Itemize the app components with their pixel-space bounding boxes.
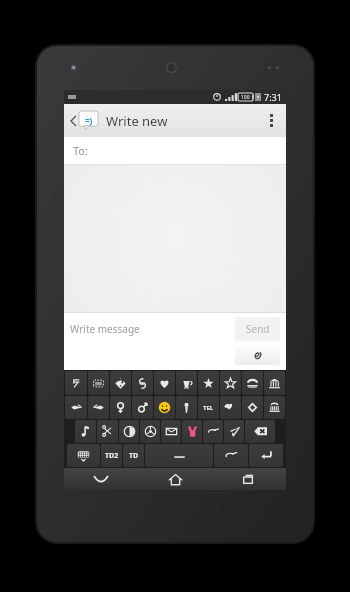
button[interactable]: MALE bbox=[132, 396, 153, 419]
button[interactable]: SCISSOR bbox=[97, 420, 118, 443]
button[interactable]: Send bbox=[235, 317, 280, 341]
button[interactable]: Back bbox=[69, 107, 100, 134]
button[interactable]: ENVELOPE bbox=[161, 420, 181, 443]
button[interactable]: CUP bbox=[176, 371, 197, 395]
button[interactable]: Write message bbox=[70, 322, 235, 336]
button[interactable]: FEMALE bbox=[110, 396, 131, 419]
button[interactable]: Recents bbox=[212, 468, 286, 490]
button[interactable]: MEDAL bbox=[176, 396, 197, 419]
button[interactable]: OBJ bbox=[88, 371, 109, 395]
button[interactable]: DIAMONDQ bbox=[110, 371, 131, 395]
button[interactable]: SECTION bbox=[132, 371, 153, 395]
button[interactable]: DEL bbox=[245, 420, 275, 443]
button[interactable]: PENCIL bbox=[214, 444, 248, 467]
button[interactable]: MOON bbox=[119, 420, 139, 443]
staticText: =) bbox=[85, 115, 93, 126]
button[interactable]: Home bbox=[138, 468, 212, 490]
button[interactable]: STAR bbox=[198, 371, 219, 395]
button[interactable]: Hide keyboard bbox=[64, 468, 138, 490]
button[interactable]: RUPEE bbox=[65, 371, 87, 395]
button[interactable]: PLANE bbox=[224, 420, 244, 443]
button[interactable]: Attach bbox=[235, 346, 280, 365]
button[interactable]: BIRD bbox=[220, 396, 241, 419]
button[interactable]: SPACE bbox=[145, 444, 213, 467]
button[interactable]: TEL bbox=[198, 396, 219, 419]
button[interactable]: FOUNT bbox=[264, 396, 285, 419]
button[interactable]: BANK bbox=[264, 371, 285, 395]
button[interactable]: DIAMOND bbox=[242, 396, 263, 419]
button[interactable]: TD bbox=[123, 444, 144, 467]
button[interactable]: PHONE bbox=[242, 371, 263, 395]
staticText: 7:31 bbox=[264, 91, 282, 103]
staticText: Send bbox=[246, 322, 270, 336]
button[interactable]: ATOM bbox=[140, 420, 160, 443]
button[interactable]: STAROUT bbox=[220, 371, 241, 395]
staticText: Write message bbox=[70, 322, 140, 336]
staticText: Write new bbox=[106, 112, 168, 130]
button[interactable]: More options bbox=[262, 106, 281, 135]
button[interactable]: NOTE bbox=[75, 420, 96, 443]
button[interactable]: PEN bbox=[203, 420, 223, 443]
staticText: TEL bbox=[203, 404, 214, 412]
button[interactable]: ARROW1 bbox=[65, 396, 87, 419]
button[interactable]: SMILEY bbox=[154, 396, 175, 419]
staticText: 100 bbox=[241, 94, 250, 101]
button[interactable]: ENTER bbox=[249, 444, 283, 467]
button[interactable]: To: bbox=[64, 137, 286, 164]
button[interactable]: ARROW2 bbox=[88, 396, 109, 419]
button[interactable]: HEART bbox=[154, 371, 175, 395]
staticText: TD2 bbox=[105, 451, 119, 461]
staticText: To: bbox=[73, 143, 88, 158]
button[interactable]: KEYBOARD bbox=[67, 444, 100, 467]
button[interactable]: TD2 bbox=[101, 444, 122, 467]
staticText: TD bbox=[129, 451, 139, 461]
button[interactable]: VICTORY bbox=[182, 420, 202, 443]
